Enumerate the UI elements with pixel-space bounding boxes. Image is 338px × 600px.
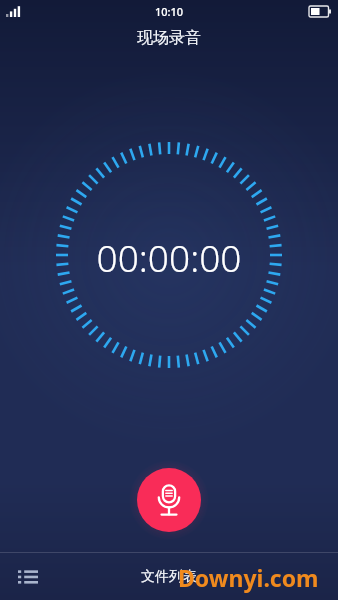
staticText: Downyi.com bbox=[178, 562, 319, 593]
button[interactable]: 文件列表 bbox=[129, 562, 209, 592]
button[interactable]: Record bbox=[137, 468, 201, 532]
staticText: 00:00:00 bbox=[0, 232, 338, 282]
staticText: 现场录音 bbox=[0, 28, 338, 48]
button[interactable]: File list menu bbox=[10, 559, 46, 595]
staticText: 10:10 bbox=[155, 4, 184, 19]
staticText: 文件列表 bbox=[141, 568, 197, 586]
